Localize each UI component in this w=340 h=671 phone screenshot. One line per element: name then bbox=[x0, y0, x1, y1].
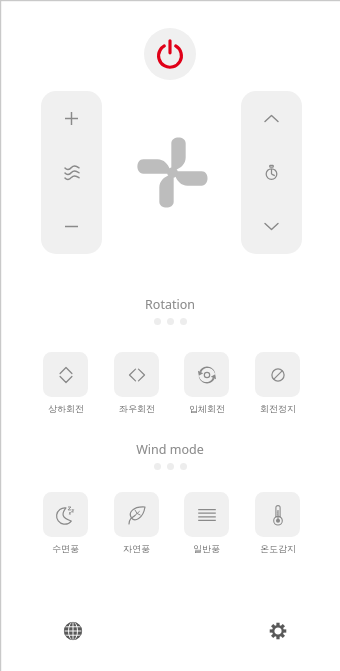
button[interactable]: 자연풍 bbox=[114, 492, 159, 554]
button[interactable]: Decrease bbox=[41, 199, 102, 254]
button[interactable]: Down bbox=[241, 199, 302, 254]
button[interactable]: 회전정지 bbox=[255, 352, 300, 414]
button[interactable]: Language bbox=[57, 615, 89, 647]
button[interactable]: Timer bbox=[241, 146, 302, 199]
staticText: 상하회전 bbox=[48, 403, 84, 414]
staticText: Wind mode bbox=[136, 441, 204, 458]
button[interactable]: Power bbox=[144, 28, 196, 80]
button[interactable]: 일반풍 bbox=[184, 492, 229, 554]
button[interactable]: Settings bbox=[262, 615, 294, 647]
staticText: 좌우회전 bbox=[119, 403, 155, 414]
button[interactable]: Up bbox=[241, 91, 302, 146]
button[interactable]: 온도감지 bbox=[255, 492, 300, 554]
staticText: 입체회전 bbox=[189, 403, 225, 414]
button[interactable]: 입체회전 bbox=[184, 352, 229, 414]
staticText: 온도감지 bbox=[260, 543, 296, 554]
button[interactable]: Wind speed bbox=[41, 146, 102, 199]
staticText: 자연풍 bbox=[123, 543, 150, 554]
button[interactable]: Increase bbox=[41, 91, 102, 146]
button[interactable]: 좌우회전 bbox=[114, 352, 159, 414]
staticText: 회전정지 bbox=[260, 403, 296, 414]
button[interactable]: 수면풍 bbox=[43, 492, 88, 554]
button[interactable]: 상하회전 bbox=[43, 352, 88, 414]
staticText: Rotation bbox=[145, 296, 195, 313]
staticText: 수면풍 bbox=[52, 543, 79, 554]
staticText: 일반풍 bbox=[193, 543, 220, 554]
